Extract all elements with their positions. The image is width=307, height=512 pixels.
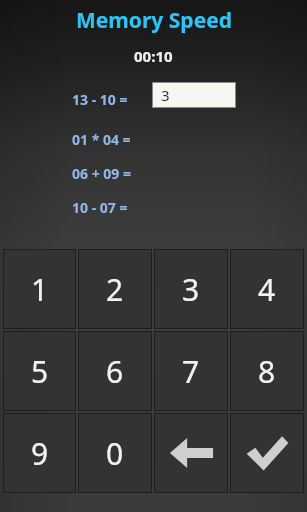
button[interactable]: 5 xyxy=(4,332,75,410)
staticText: 10 - 07 = xyxy=(72,198,128,220)
staticText: 13 - 10 = xyxy=(72,90,128,112)
staticText: 9 xyxy=(31,433,49,474)
button[interactable]: 3 xyxy=(153,83,235,107)
staticText: 7 xyxy=(182,351,200,392)
button[interactable]: 9 xyxy=(4,414,75,492)
button[interactable]: 6 xyxy=(79,332,151,410)
staticText: 2 xyxy=(106,269,124,310)
button[interactable]: Confirm xyxy=(231,414,303,492)
staticText: 8 xyxy=(258,351,276,392)
staticText: 00:10 xyxy=(134,46,173,66)
staticText: 1 xyxy=(31,269,49,310)
button[interactable]: 0 xyxy=(79,414,151,492)
staticText: 5 xyxy=(31,351,49,392)
staticText: Memory Speed xyxy=(76,6,232,35)
button[interactable]: Backspace xyxy=(155,414,227,492)
staticText: 06 + 09 = xyxy=(72,164,131,186)
staticText: 01 * 04 = xyxy=(72,130,131,152)
staticText: 0 xyxy=(106,433,124,474)
button[interactable]: 3 xyxy=(155,250,227,328)
staticText: 6 xyxy=(106,351,124,392)
staticText: 4 xyxy=(258,269,276,310)
button[interactable]: 1 xyxy=(4,250,75,328)
button[interactable]: 2 xyxy=(79,250,151,328)
button[interactable]: 8 xyxy=(231,332,303,410)
button[interactable]: 7 xyxy=(155,332,227,410)
staticText: 3 xyxy=(182,269,200,310)
staticText: 3 xyxy=(161,85,170,105)
button[interactable]: 4 xyxy=(231,250,303,328)
